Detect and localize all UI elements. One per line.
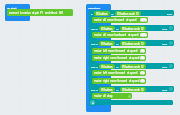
- button[interactable]: IR button: [99, 87, 115, 92]
- button[interactable]: motor: [92, 55, 146, 61]
- button[interactable]: if: [89, 10, 174, 16]
- staticText: right: [103, 56, 109, 60]
- staticText: 50: [141, 80, 144, 83]
- staticText: then: [167, 12, 173, 15]
- staticText: IR button code 12: [122, 88, 144, 92]
- button[interactable]: else if: [89, 40, 174, 46]
- button[interactable]: else if: [89, 25, 174, 31]
- staticText: IR button code 12: [122, 42, 144, 46]
- button[interactable]: motor: [92, 78, 146, 84]
- button[interactable]: IR button: [99, 64, 115, 69]
- staticText: motor: [94, 33, 102, 37]
- staticText: all: [103, 94, 106, 98]
- staticText: then: [162, 88, 168, 91]
- staticText: P1: [40, 11, 44, 15]
- staticText: ==: [116, 27, 119, 30]
- staticText: to motor: [20, 11, 31, 15]
- button[interactable]: 100: [140, 18, 147, 22]
- staticText: NO: [59, 11, 63, 15]
- staticText: move forward: [110, 56, 128, 60]
- button[interactable]: Block menu: [169, 87, 173, 91]
- button[interactable]: IR button code 12: [115, 11, 141, 16]
- button[interactable]: Block menu: [169, 26, 173, 30]
- staticText: then: [162, 27, 168, 30]
- button[interactable]: 50: [140, 56, 145, 60]
- staticText: ==: [116, 65, 119, 68]
- staticText: IR button: [96, 12, 108, 16]
- staticText: IR button: [101, 42, 113, 46]
- staticText: then: [162, 65, 168, 68]
- staticText: motor: [94, 18, 102, 22]
- staticText: ==: [111, 12, 114, 15]
- staticText: if: [91, 12, 93, 15]
- staticText: at speed: [127, 71, 138, 75]
- staticText: at speed: [129, 56, 140, 60]
- button[interactable]: motor: [92, 17, 148, 23]
- button[interactable]: Block menu: [169, 64, 173, 68]
- staticText: IR button: [101, 65, 113, 69]
- button[interactable]: Add branch: [90, 100, 95, 105]
- button[interactable]: else if: [89, 63, 174, 69]
- staticText: IR button: [101, 27, 113, 31]
- staticText: move forward: [107, 18, 125, 22]
- button[interactable]: IR button code 12: [120, 64, 146, 69]
- staticText: left: [103, 71, 107, 75]
- button[interactable]: IR button: [99, 41, 115, 46]
- staticText: on start: [7, 6, 17, 9]
- staticText: motor: [94, 49, 102, 53]
- button[interactable]: 50: [140, 71, 145, 75]
- staticText: else if: [91, 88, 98, 91]
- staticText: else if: [91, 27, 98, 30]
- staticText: at speed: [126, 18, 137, 22]
- staticText: 100: [141, 34, 146, 37]
- staticText: stop: [107, 94, 113, 98]
- other: Block programming workspace: [0, 0, 180, 115]
- staticText: and direct: [45, 11, 58, 15]
- button[interactable]: motor: [92, 48, 146, 54]
- staticText: move forward: [110, 79, 128, 83]
- button[interactable]: motor: [92, 70, 146, 76]
- button[interactable]: IR button code 12: [120, 41, 146, 46]
- staticText: connect: [9, 11, 19, 15]
- staticText: ==: [116, 88, 119, 91]
- staticText: all: [103, 18, 106, 22]
- staticText: 50: [141, 57, 144, 60]
- button[interactable]: connect: [7, 9, 73, 16]
- staticText: ==: [116, 42, 119, 45]
- staticText: at speed: [128, 33, 139, 37]
- button[interactable]: else if: [89, 86, 174, 92]
- staticText: at speed: [129, 79, 140, 83]
- staticText: 100: [141, 19, 146, 22]
- button[interactable]: on start: [5, 4, 30, 21]
- button[interactable]: Block menu: [169, 41, 173, 45]
- staticText: left: [103, 49, 107, 53]
- staticText: motor: [94, 56, 102, 60]
- staticText: move backward: [107, 33, 127, 37]
- staticText: IR button code 12: [117, 12, 139, 16]
- staticText: IR button code 12: [122, 65, 144, 69]
- staticText: 50: [141, 72, 144, 75]
- staticText: IR button: [101, 88, 113, 92]
- button[interactable]: 50: [140, 49, 145, 53]
- staticText: then: [162, 42, 168, 45]
- button[interactable]: 50: [140, 79, 145, 83]
- staticText: 50: [141, 50, 144, 53]
- staticText: motor: [94, 71, 102, 75]
- staticText: all: [103, 33, 106, 37]
- button[interactable]: IR button: [99, 26, 115, 31]
- button[interactable]: motor: [92, 93, 132, 99]
- staticText: else if: [91, 42, 98, 45]
- staticText: motor: [94, 94, 102, 98]
- button[interactable]: Operators: [86, 4, 111, 112]
- staticText: move forward: [108, 71, 126, 75]
- button[interactable]: IR button: [94, 11, 110, 16]
- button[interactable]: 100: [140, 33, 147, 37]
- button[interactable]: motor: [92, 32, 148, 38]
- button[interactable]: IR button code 12: [120, 26, 146, 31]
- button[interactable]: IR button code 12: [120, 87, 146, 92]
- staticText: move forward: [108, 49, 126, 53]
- staticText: at pin: [32, 11, 39, 15]
- staticText: else if: [91, 65, 98, 68]
- staticText: motor: [94, 79, 102, 83]
- staticText: right: [103, 79, 109, 83]
